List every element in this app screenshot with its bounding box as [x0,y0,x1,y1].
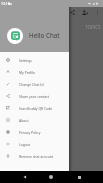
button[interactable]: Back [19,171,30,183]
button[interactable]: Share your contact [0,90,69,102]
button[interactable]: About [0,114,69,126]
staticText: Privacy Policy [19,130,41,135]
staticText: Share your contact [19,94,49,99]
staticText: 12:10 [1,1,10,6]
staticText: About [19,118,29,123]
button[interactable]: Home [45,171,56,183]
button[interactable]: More options [93,8,101,16]
staticText: Scan Buddy QR Code [19,106,53,111]
staticText: Settings [19,58,32,63]
button[interactable]: Change Chat Id [0,78,69,90]
button[interactable]: Add person [80,8,89,17]
button[interactable]: Settings [0,54,69,66]
staticText: Change Chat Id [19,82,44,87]
button[interactable]: Recents [74,171,85,183]
staticText: Hello Chat [29,31,60,40]
button[interactable]: Logout [0,138,69,150]
button[interactable]: Share [68,8,76,16]
staticText: My Profile [19,70,35,75]
button[interactable]: Scan Buddy QR Code [0,102,69,114]
button[interactable]: TOPICS [85,24,101,30]
staticText: Logout [19,142,31,147]
button[interactable]: My Profile [0,66,69,78]
staticText: Remove chat account [19,154,54,159]
button[interactable]: Privacy Policy [0,126,69,138]
button[interactable]: Remove chat account [0,150,69,162]
